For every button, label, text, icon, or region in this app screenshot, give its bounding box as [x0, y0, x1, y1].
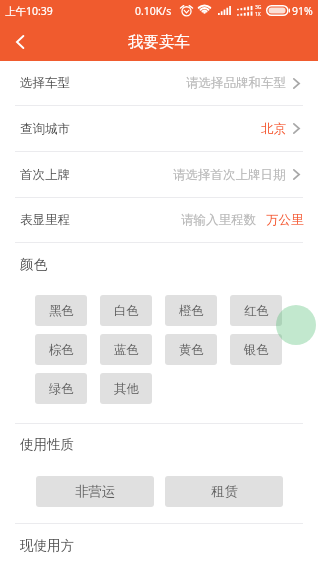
staticText: 万公里: [266, 212, 304, 228]
staticText: 3G: [255, 4, 262, 11]
staticText: 黄色: [179, 342, 204, 358]
staticText: 白色: [114, 303, 139, 319]
button[interactable]: 银色: [230, 334, 282, 365]
button[interactable]: Back: [0, 20, 41, 61]
button[interactable]: 橙色: [165, 295, 217, 326]
staticText: 北京: [261, 121, 286, 137]
button[interactable]: 红色: [230, 295, 282, 326]
staticText: 上午10:39: [5, 4, 53, 18]
staticText: 查询城市: [20, 121, 70, 137]
button[interactable]: 黄色: [165, 334, 217, 365]
staticText: 红色: [244, 303, 269, 319]
staticText: 使用性质: [20, 436, 74, 453]
staticText: 黑色: [49, 303, 74, 319]
button[interactable]: 非营运: [36, 476, 154, 507]
staticText: 请选择首次上牌日期: [173, 167, 286, 183]
staticText: 颜色: [20, 256, 47, 273]
staticText: 选择车型: [20, 75, 70, 91]
staticText: 91%: [292, 4, 313, 18]
staticText: 请选择品牌和车型: [186, 75, 286, 91]
staticText: 请输入里程数: [181, 212, 256, 228]
staticText: 蓝色: [114, 342, 139, 358]
button[interactable]: Assistant: [276, 305, 316, 345]
button[interactable]: 表显里程: [0, 198, 318, 242]
button[interactable]: 棕色: [35, 334, 87, 365]
staticText: 银色: [244, 342, 269, 358]
button[interactable]: 查询城市: [0, 106, 318, 151]
staticText: 现使用方: [20, 537, 74, 554]
button[interactable]: 蓝色: [100, 334, 152, 365]
staticText: 表显里程: [20, 212, 70, 228]
staticText: 0.10K/s: [135, 4, 172, 18]
staticText: 绿色: [49, 381, 74, 397]
staticText: 其他: [114, 381, 139, 397]
staticText: 1X: [255, 11, 261, 18]
button[interactable]: 其他: [100, 373, 152, 404]
staticText: 非营运: [75, 483, 116, 500]
staticText: 首次上牌: [20, 167, 70, 183]
button[interactable]: 绿色: [35, 373, 87, 404]
button[interactable]: 黑色: [35, 295, 87, 326]
button[interactable]: 白色: [100, 295, 152, 326]
button[interactable]: 选择车型: [0, 61, 318, 105]
button[interactable]: 首次上牌: [0, 152, 318, 197]
staticText: 我要卖车: [128, 32, 190, 52]
staticText: 橙色: [179, 303, 204, 319]
staticText: 棕色: [49, 342, 74, 358]
button[interactable]: 租赁: [165, 476, 283, 507]
staticText: 租赁: [211, 483, 238, 500]
